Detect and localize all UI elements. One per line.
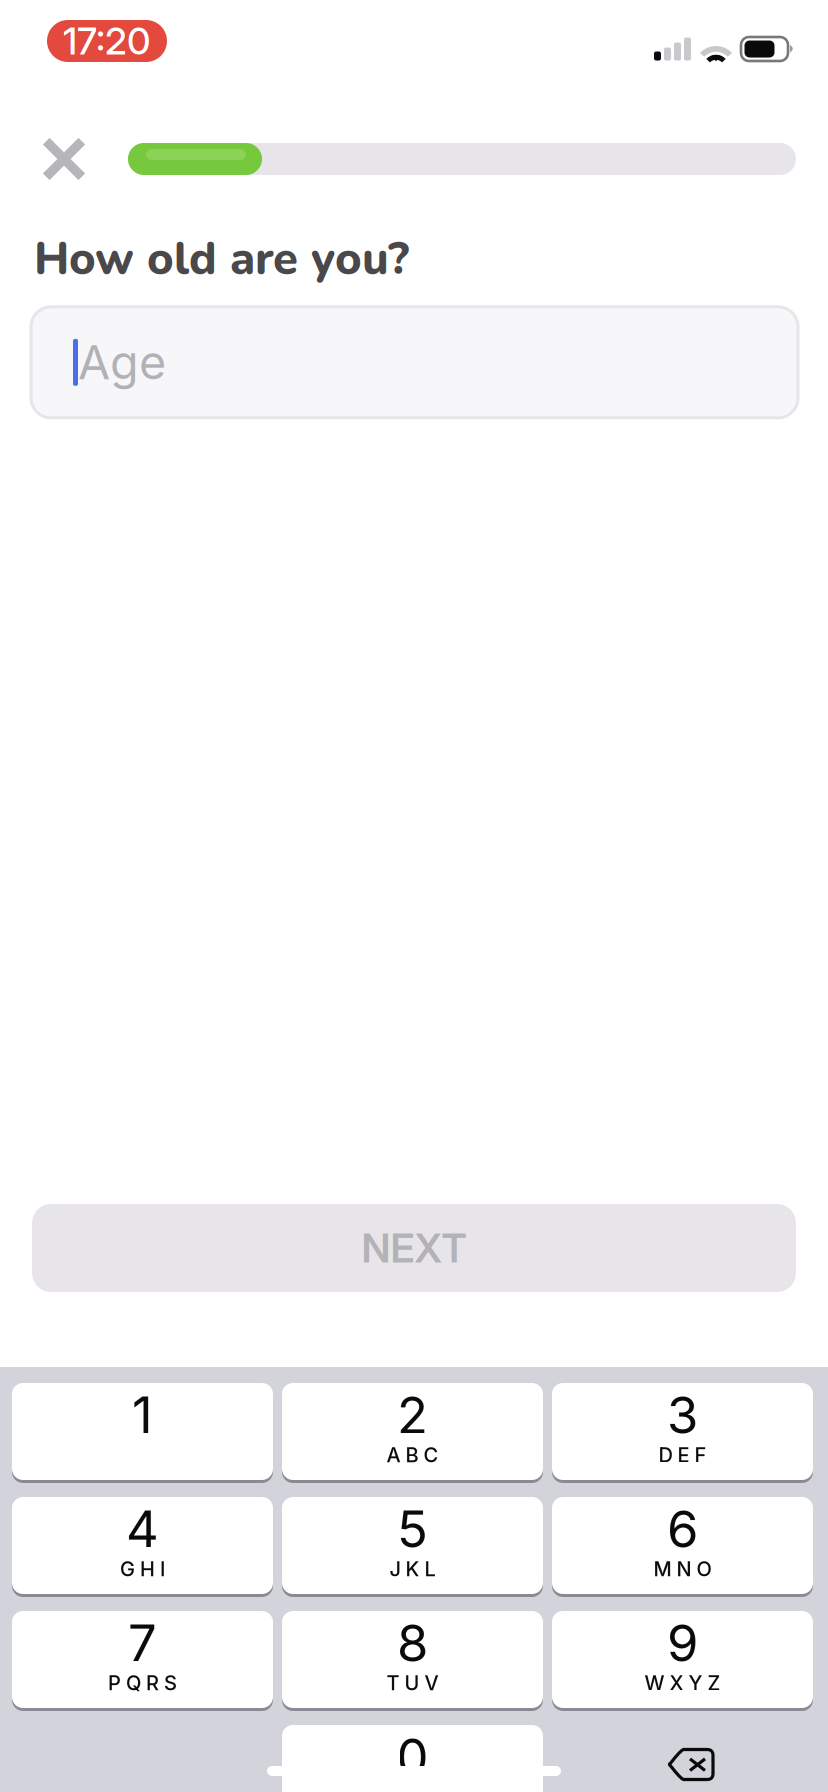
button[interactable]: 9: [552, 1611, 813, 1711]
staticText: 17:20: [63, 18, 151, 64]
button[interactable]: 0: [282, 1725, 543, 1792]
button[interactable]: 7: [12, 1611, 273, 1711]
staticText: 7: [128, 1612, 157, 1674]
staticText: 3: [667, 1384, 698, 1446]
staticText: D E F: [658, 1443, 706, 1467]
button[interactable]: 6: [552, 1497, 813, 1597]
staticText: 8: [397, 1612, 428, 1674]
button[interactable]: 3: [552, 1383, 813, 1483]
staticText: 2: [397, 1384, 428, 1446]
staticText: 5: [397, 1498, 428, 1560]
staticText: W X Y Z: [644, 1671, 720, 1695]
button[interactable]: Delete: [552, 1726, 813, 1792]
button[interactable]: 1: [12, 1383, 273, 1483]
staticText: P Q R S: [108, 1671, 177, 1695]
button[interactable]: NEXT: [0, 1204, 828, 1292]
staticText: 6: [667, 1498, 698, 1560]
button[interactable]: 5: [282, 1497, 543, 1597]
staticText: 1: [132, 1384, 153, 1446]
staticText: A B C: [386, 1443, 438, 1467]
staticText: 4: [126, 1498, 159, 1560]
staticText: T U V: [386, 1671, 438, 1695]
staticText: G H I: [120, 1557, 165, 1581]
staticText: 0: [396, 1726, 428, 1788]
staticText: NEXT: [361, 1224, 466, 1272]
staticText: M N O: [653, 1557, 711, 1581]
staticText: How old are you?: [34, 228, 409, 290]
button[interactable]: 8: [282, 1611, 543, 1711]
button[interactable]: 4: [12, 1497, 273, 1597]
staticText: J K L: [389, 1557, 435, 1581]
staticText: Age: [78, 334, 166, 391]
button[interactable]: Close: [41, 136, 87, 182]
staticText: 9: [667, 1612, 698, 1674]
button[interactable]: Age: [0, 307, 828, 418]
button[interactable]: 2: [282, 1383, 543, 1483]
